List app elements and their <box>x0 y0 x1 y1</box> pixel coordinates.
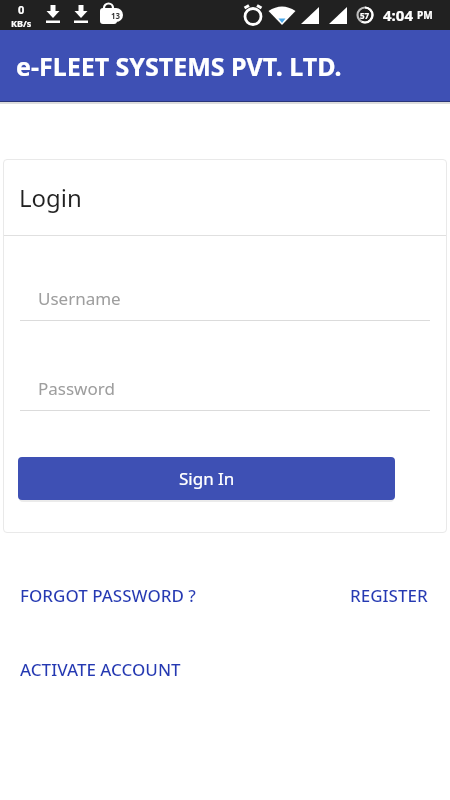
staticText: KB/s <box>11 17 32 29</box>
staticText: Login <box>19 181 82 214</box>
staticText: 57 <box>360 10 370 21</box>
button[interactable]: FORGOT PASSWORD ? <box>20 584 196 607</box>
staticText: 4:04 <box>383 5 413 25</box>
button[interactable]: Username <box>38 287 121 310</box>
staticText: PM <box>417 8 433 22</box>
staticText: Password <box>38 377 115 400</box>
staticText: ACTIVATE ACCOUNT <box>20 658 181 681</box>
button[interactable]: ACTIVATE ACCOUNT <box>20 658 181 681</box>
button[interactable]: Sign In <box>18 457 395 500</box>
staticText: REGISTER <box>350 584 428 607</box>
staticText: FORGOT PASSWORD ? <box>20 584 196 607</box>
staticText: 13 <box>111 10 121 21</box>
staticText: Username <box>38 287 121 310</box>
button[interactable]: Password <box>38 377 115 400</box>
button[interactable]: REGISTER <box>350 584 428 607</box>
staticText: 0 <box>18 2 25 17</box>
staticText: Sign In <box>179 467 235 490</box>
staticText: e-FLEET SYSTEMS PVT. LTD. <box>16 49 342 83</box>
